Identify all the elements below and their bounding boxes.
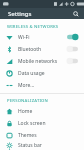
button[interactable]: Wi-Fi [0, 31, 84, 43]
button[interactable]: Search [71, 9, 80, 18]
staticText: Settings [8, 10, 32, 18]
staticText: Home [18, 108, 79, 115]
button[interactable]: More... [0, 79, 84, 91]
staticText: Themes [18, 132, 79, 139]
button[interactable]: Themes [0, 129, 84, 141]
button[interactable]: Home [0, 105, 84, 117]
button[interactable]: Lock screen [0, 117, 84, 129]
staticText: More... [18, 82, 79, 89]
staticText: Data usage [18, 70, 79, 77]
button[interactable] [66, 45, 79, 53]
staticText: Mobile networks [18, 58, 66, 65]
button[interactable]: Mobile networks [0, 55, 84, 67]
button[interactable]: Data usage [0, 67, 84, 79]
button[interactable] [66, 57, 79, 65]
staticText: WIRELESS & NETWORKS [7, 24, 59, 30]
staticText: Bluetooth [18, 46, 66, 53]
staticText: Wi-Fi [18, 34, 66, 41]
staticText: PERSONALIZATION [7, 98, 49, 104]
staticText: Status bar [18, 142, 79, 149]
button[interactable]: Bluetooth [0, 43, 84, 55]
staticText: Lock screen [18, 120, 79, 127]
button[interactable] [66, 33, 79, 41]
button[interactable]: Status bar [0, 141, 84, 150]
